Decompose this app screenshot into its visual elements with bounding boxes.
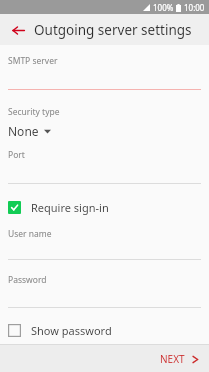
- staticText: Require sign-in: [31, 200, 109, 215]
- staticText: Port: [8, 149, 25, 161]
- staticText: Show password: [31, 323, 112, 338]
- staticText: Outgoing server settings: [34, 21, 192, 39]
- button[interactable]: Require sign-in: [0, 197, 209, 218]
- button[interactable]: SMTP server: [8, 55, 201, 67]
- staticText: User name: [8, 228, 52, 240]
- button[interactable]: NEXT: [146, 348, 209, 370]
- staticText: None: [8, 123, 39, 139]
- button[interactable]: None: [0, 122, 209, 140]
- staticText: 100%: [153, 2, 174, 13]
- staticText: NEXT: [160, 352, 185, 366]
- button[interactable]: Navigate up: [6, 18, 30, 42]
- staticText: 10:00: [184, 2, 205, 13]
- staticText: Security type: [8, 106, 60, 118]
- button[interactable]: Show password: [0, 320, 209, 341]
- staticText: SMTP server: [8, 55, 58, 67]
- staticText: Password: [8, 274, 47, 286]
